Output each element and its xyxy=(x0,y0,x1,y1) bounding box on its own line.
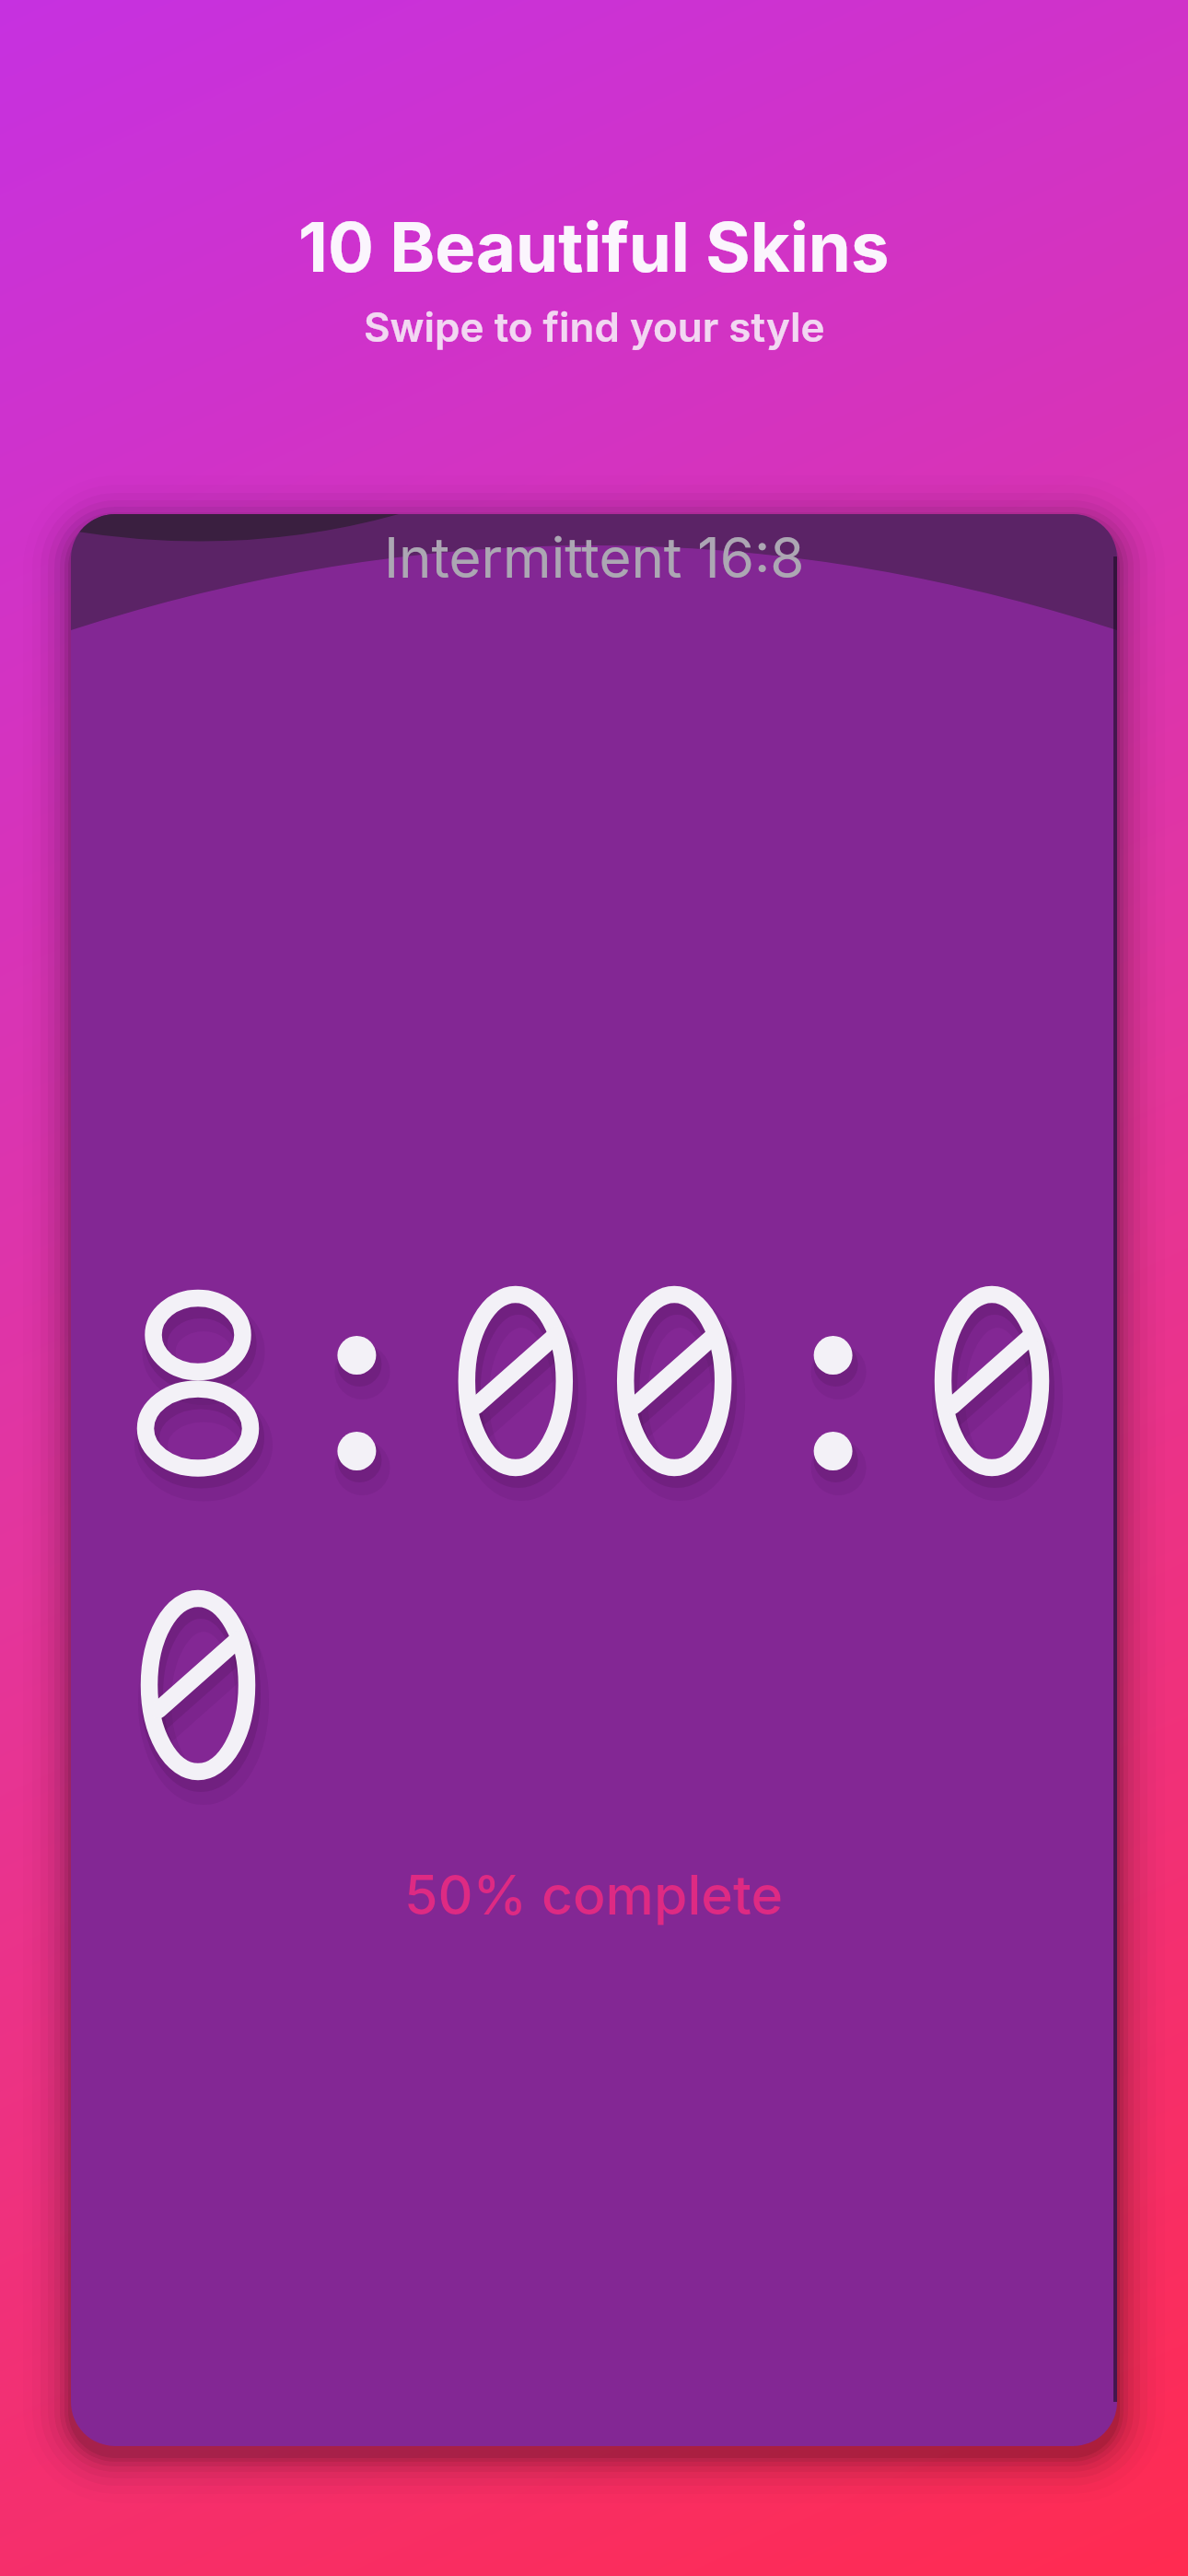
staticText: 10 Beautiful Skins xyxy=(298,205,890,288)
button[interactable]: Intermittent 16:8 xyxy=(71,514,1117,2446)
staticText: Swipe to find your style xyxy=(364,302,825,351)
staticText: 50% complete xyxy=(404,1862,784,1927)
staticText: Intermittent 16:8 xyxy=(384,524,805,591)
